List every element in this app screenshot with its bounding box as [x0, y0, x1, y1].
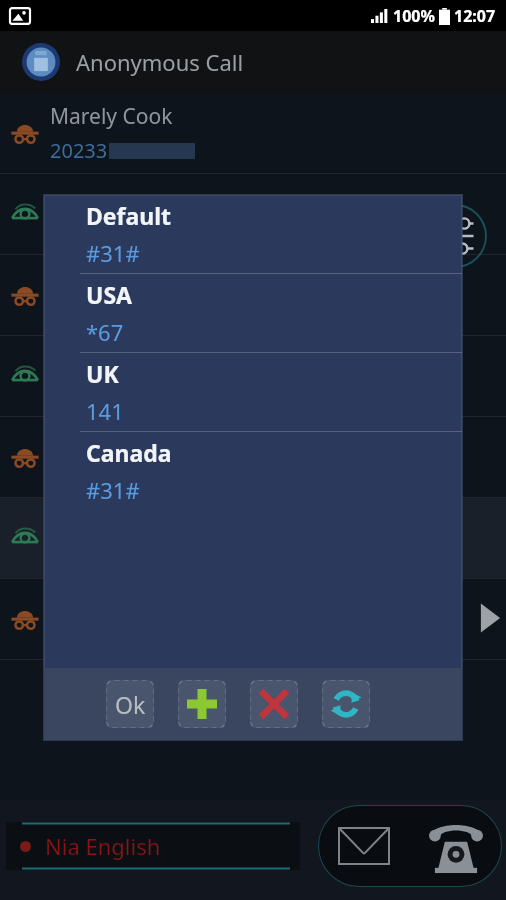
button[interactable]	[0, 579, 506, 659]
staticText: 141	[86, 396, 124, 426]
button[interactable]	[0, 255, 506, 335]
button[interactable]: Canada	[44, 432, 462, 510]
button[interactable]	[0, 336, 506, 416]
button[interactable]	[0, 498, 506, 578]
staticText: Nia English	[45, 831, 161, 861]
button[interactable]: UK	[44, 353, 462, 431]
button[interactable]: Marely Cook	[0, 93, 506, 173]
staticText: #31#	[86, 238, 140, 268]
staticText: UK	[86, 358, 119, 389]
button[interactable]: Ramon Aguilar	[0, 174, 506, 254]
button[interactable]: Action	[250, 680, 298, 728]
button[interactable]: Anonymous Call	[0, 31, 506, 93]
staticText: Canada	[86, 437, 172, 468]
staticText: Default	[86, 200, 172, 231]
staticText: *67	[86, 317, 124, 347]
button[interactable]: Default	[44, 195, 462, 273]
staticText: USA	[86, 279, 132, 310]
staticText: 100%	[393, 5, 435, 27]
staticText: Ok	[115, 689, 146, 720]
button[interactable]: Action	[178, 680, 226, 728]
staticText: Anonymous Call	[76, 47, 244, 77]
button[interactable]: Call	[410, 805, 502, 887]
button[interactable]	[0, 417, 506, 497]
button[interactable]: Settings	[422, 203, 488, 269]
staticText: Marely Cook	[50, 102, 173, 131]
button[interactable]: Message	[318, 805, 410, 887]
button[interactable]: Action	[106, 680, 154, 728]
staticText: Ramon Aguilar	[50, 197, 197, 226]
button[interactable]: Nia English	[6, 822, 300, 870]
button[interactable]: USA	[44, 274, 462, 352]
button[interactable]: Next	[478, 598, 502, 638]
staticText: #31#	[86, 475, 140, 505]
staticText: 20233	[50, 137, 108, 164]
button[interactable]: Action	[322, 680, 370, 728]
staticText: 12:07	[454, 5, 496, 27]
